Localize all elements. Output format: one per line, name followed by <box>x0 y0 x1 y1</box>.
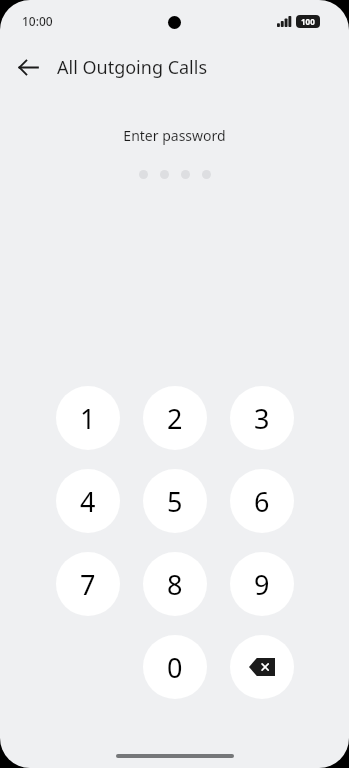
staticText: 6 <box>254 483 270 520</box>
button[interactable]: 5 <box>143 469 207 533</box>
staticText: 100 <box>301 16 315 27</box>
button[interactable]: 3 <box>230 386 294 450</box>
staticText: 9 <box>254 566 270 603</box>
button[interactable]: 4 <box>56 469 120 533</box>
staticText: 5 <box>167 483 183 520</box>
staticText: 7 <box>80 566 96 603</box>
button[interactable]: Backspace <box>230 635 294 699</box>
staticText: 3 <box>254 400 270 437</box>
button[interactable]: Back <box>8 47 48 87</box>
staticText: All Outgoing Calls <box>57 55 208 80</box>
button[interactable]: 1 <box>56 386 120 450</box>
button[interactable]: 6 <box>230 469 294 533</box>
button[interactable]: 8 <box>143 552 207 616</box>
staticText: 8 <box>167 566 183 603</box>
button[interactable]: 9 <box>230 552 294 616</box>
button[interactable]: 7 <box>56 552 120 616</box>
button[interactable]: 2 <box>143 386 207 450</box>
button[interactable]: 0 <box>143 635 207 699</box>
staticText: 0 <box>167 649 183 686</box>
staticText: 1 <box>80 400 96 437</box>
staticText: 4 <box>80 483 96 520</box>
staticText: 2 <box>167 400 183 437</box>
staticText: Enter password <box>0 126 349 145</box>
staticText: 10:00 <box>22 13 53 29</box>
